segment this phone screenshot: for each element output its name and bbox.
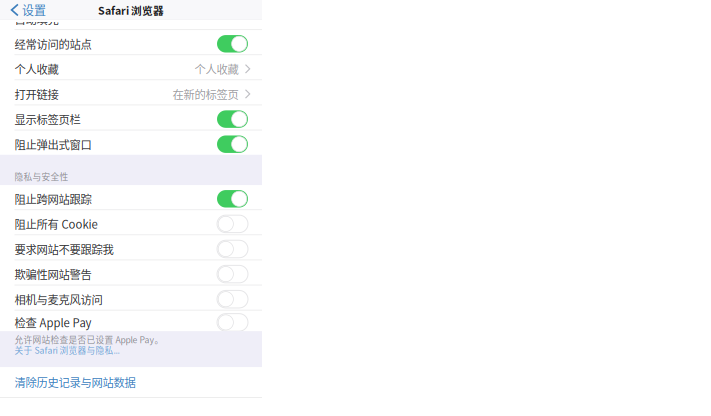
staticText: 检查 Apple Pay xyxy=(14,314,91,331)
button[interactable]: 检查 Apple Pay xyxy=(0,311,262,331)
button[interactable]: 设置 xyxy=(0,0,54,20)
staticText: 自动填充 xyxy=(14,11,58,27)
button[interactable]: 个人收藏 xyxy=(0,55,262,79)
staticText: 阻止所有 Cookie xyxy=(14,216,97,232)
staticText: 个人收藏 xyxy=(14,61,58,77)
button[interactable]: 经常访问的站点 xyxy=(0,30,262,54)
staticText: Safari 浏览器 xyxy=(98,2,164,18)
button[interactable]: 要求网站不要跟踪我 xyxy=(0,235,262,260)
button[interactable]: 打开链接 xyxy=(0,80,262,105)
staticText: 欺骗性网站警告 xyxy=(14,266,91,282)
button[interactable]: 清除历史记录与网站数据 xyxy=(0,367,262,397)
button[interactable]: 阻止弹出式窗口 xyxy=(0,131,262,155)
staticText: 相机与麦克风访问 xyxy=(14,291,102,307)
staticText: 设置 xyxy=(22,1,46,19)
staticText: 要求网站不要跟踪我 xyxy=(14,241,113,257)
button[interactable]: 相机与麦克风访问 xyxy=(0,286,262,310)
staticText: 隐私与安全性 xyxy=(14,170,68,183)
staticText: 清除历史记录与网站数据 xyxy=(14,374,135,390)
staticText: 允许网站检查是否已设置 Apple Pay。 xyxy=(14,333,163,346)
staticText: 关于 Safari 浏览器与隐私... xyxy=(14,344,119,356)
staticText: 显示标签页栏 xyxy=(14,111,80,127)
staticText: 打开链接 xyxy=(14,86,58,102)
button[interactable]: 阻止跨网站跟踪 xyxy=(0,185,262,209)
staticText: 经常访问的站点 xyxy=(14,36,91,52)
staticText: 阻止跨网站跟踪 xyxy=(14,191,91,207)
staticText: 阻止弹出式窗口 xyxy=(14,136,91,152)
staticText: 在新的标签页 xyxy=(172,86,238,102)
button[interactable]: 显示标签页栏 xyxy=(0,105,262,130)
button[interactable]: 阻止所有 Cookie xyxy=(0,210,262,234)
staticText: 个人收藏 xyxy=(194,61,238,77)
button[interactable]: 欺骗性网站警告 xyxy=(0,260,262,285)
button[interactable]: 关于 Safari 浏览器与隐私... xyxy=(0,331,119,344)
